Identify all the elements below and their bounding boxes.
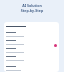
staticText: Step-by-Step xyxy=(0,8,64,13)
staticText: AI Solution xyxy=(0,3,64,8)
